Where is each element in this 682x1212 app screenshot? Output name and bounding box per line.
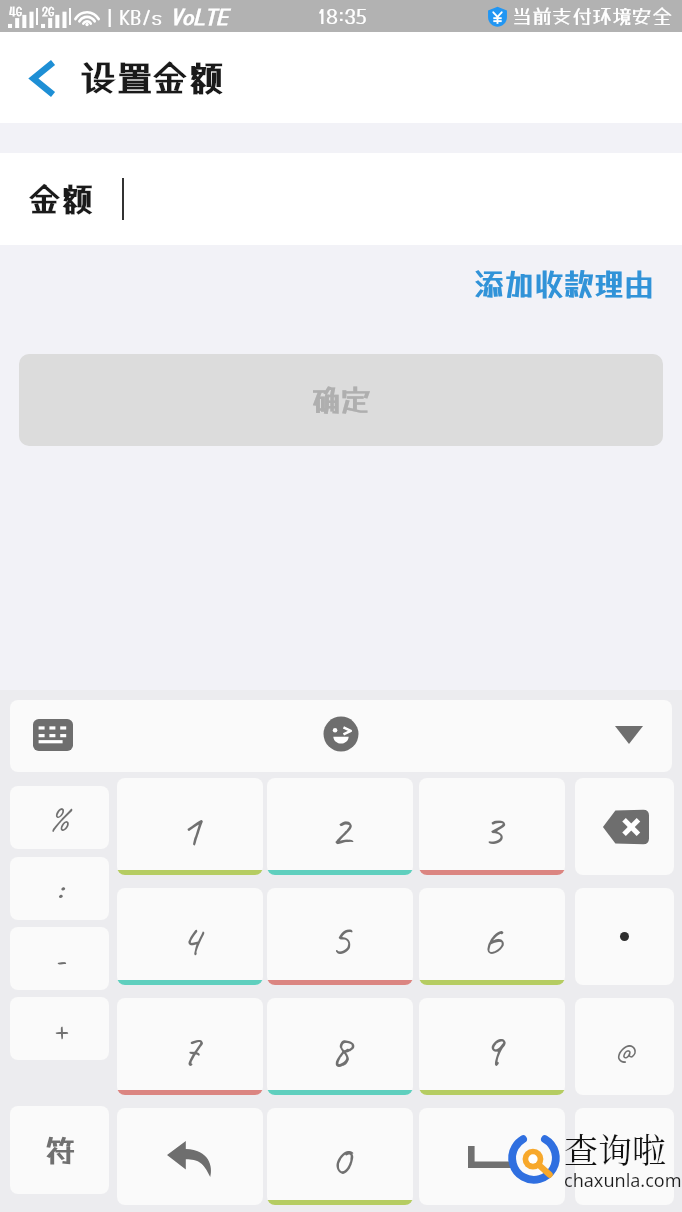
button[interactable]: Hide keyboard xyxy=(604,711,654,761)
staticText: 确定 xyxy=(311,383,371,418)
button[interactable]: At sign xyxy=(575,998,674,1095)
staticText: 4 xyxy=(180,911,201,969)
button[interactable]: Emoji xyxy=(312,707,370,765)
staticText: % xyxy=(49,796,70,839)
staticText: 当前支付环境安全 xyxy=(512,4,672,28)
button[interactable]: 0 xyxy=(267,1108,413,1205)
button[interactable]: Switch keyboard xyxy=(24,707,82,765)
staticText: | KB/s xyxy=(105,6,162,28)
button[interactable]: 6 xyxy=(419,888,565,985)
button[interactable]: 8 xyxy=(267,998,413,1095)
button[interactable]: 3 xyxy=(419,778,565,875)
button[interactable]: 1 xyxy=(117,778,263,875)
button[interactable]: + xyxy=(10,997,109,1060)
button[interactable]: Decimal point xyxy=(575,888,674,985)
staticText: 3 xyxy=(482,801,503,859)
button[interactable]: 2 xyxy=(267,778,413,875)
button[interactable]: Enter xyxy=(575,1108,674,1205)
staticText: 8 xyxy=(330,1021,351,1079)
staticText: chaxunla.com xyxy=(564,1168,682,1187)
staticText: 符 xyxy=(45,1133,75,1168)
staticText: 5 xyxy=(330,911,351,969)
button[interactable]: : xyxy=(10,857,109,920)
button[interactable]: 7 xyxy=(117,998,263,1095)
staticText: 7 xyxy=(180,1021,201,1079)
button[interactable]: - xyxy=(10,927,109,990)
button[interactable]: 9 xyxy=(419,998,565,1095)
staticText: VoLTE xyxy=(170,4,228,29)
staticText: - xyxy=(54,937,66,980)
staticText: 设置金额 xyxy=(80,57,225,99)
staticText: 查询啦 xyxy=(564,1124,666,1173)
button[interactable]: 确定 xyxy=(19,354,663,446)
staticText: : xyxy=(56,867,63,910)
button[interactable]: 添加收款理由 xyxy=(470,263,658,306)
staticText: + xyxy=(52,1007,68,1050)
button[interactable]: Undo xyxy=(117,1108,263,1205)
button[interactable]: Space xyxy=(419,1108,565,1205)
staticText: 9 xyxy=(482,1021,503,1079)
staticText: 0 xyxy=(330,1131,351,1189)
staticText: 2 xyxy=(330,801,351,859)
staticText: 18:35 xyxy=(318,4,367,28)
button[interactable]: Back xyxy=(18,54,66,102)
button[interactable]: Delete xyxy=(575,778,674,875)
button[interactable]: 符 xyxy=(10,1106,109,1194)
staticText: 4G xyxy=(9,5,23,18)
staticText: @ xyxy=(615,1030,635,1068)
button[interactable]: % xyxy=(10,786,109,849)
staticText: 1 xyxy=(180,801,201,859)
staticText: 2G xyxy=(42,5,55,18)
button[interactable]: 4 xyxy=(117,888,263,985)
staticText: 金额 xyxy=(28,180,94,219)
staticText: 6 xyxy=(482,911,503,969)
button[interactable]: 5 xyxy=(267,888,413,985)
